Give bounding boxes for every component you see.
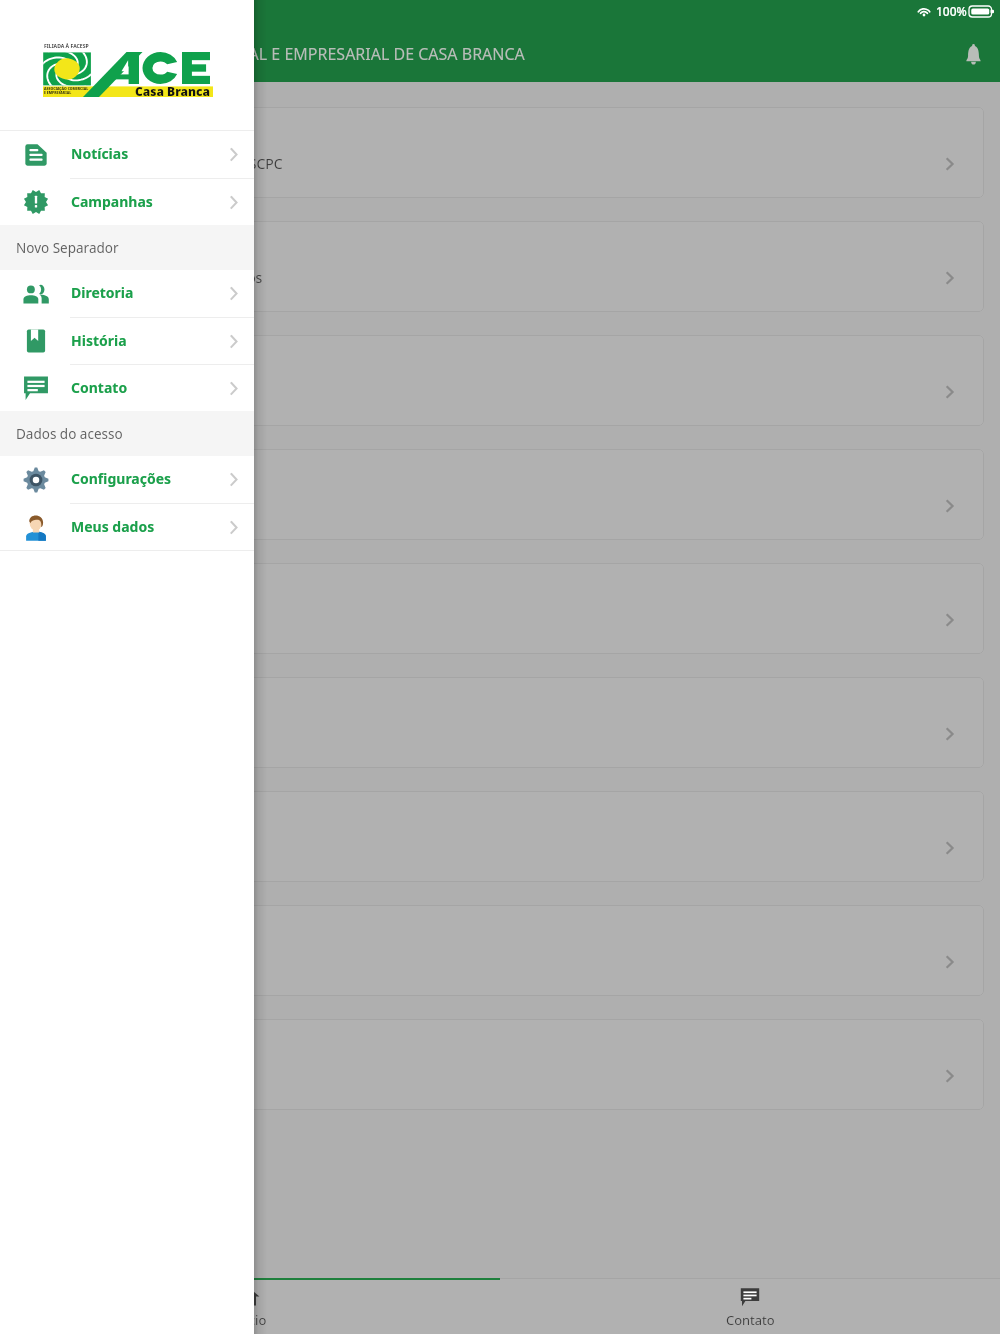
staticText: Meus dados bbox=[71, 517, 155, 536]
staticText: Campanhas bbox=[157, 496, 236, 515]
button[interactable]: Notícias bbox=[0, 131, 254, 178]
staticText: E EMPRESARIAL bbox=[44, 90, 72, 95]
button[interactable]: Contato bbox=[16, 791, 984, 882]
button[interactable]: Notificações bbox=[952, 33, 994, 75]
button[interactable]: Configurações bbox=[16, 905, 984, 996]
button[interactable]: História bbox=[16, 677, 984, 768]
button[interactable]: Início bbox=[0, 1278, 500, 1334]
staticText: Novo Separador bbox=[16, 239, 119, 257]
staticText: Diretoria bbox=[71, 283, 134, 302]
staticText: Notícias bbox=[71, 144, 129, 163]
button[interactable]: Meus dados bbox=[0, 504, 254, 550]
staticText: História bbox=[71, 331, 127, 350]
staticText: 100% bbox=[936, 3, 967, 19]
staticText: Consulta SPC/SCPC bbox=[157, 154, 283, 173]
button[interactable]: Meus dados bbox=[16, 1019, 984, 1110]
staticText: Casa Branca bbox=[135, 83, 211, 99]
staticText: ASSOCIAÇÃO COMERCIAL bbox=[44, 86, 89, 91]
button[interactable]: Contato bbox=[0, 365, 254, 411]
staticText: Dados do acesso bbox=[16, 425, 123, 443]
staticText: Início bbox=[233, 1311, 267, 1329]
staticText: Campanhas bbox=[71, 192, 153, 211]
button[interactable]: História bbox=[0, 318, 254, 364]
staticText: Configurações bbox=[71, 469, 172, 488]
button[interactable]: Contato bbox=[500, 1278, 1000, 1334]
button[interactable]: Diretoria bbox=[0, 270, 254, 317]
staticText: Nossos Serviços bbox=[157, 268, 263, 287]
button[interactable]: Nossos Serviços bbox=[16, 221, 984, 312]
button[interactable]: Consulta SPC/SCPC bbox=[16, 107, 984, 198]
button[interactable]: Configurações bbox=[0, 456, 254, 503]
staticText: Contato bbox=[726, 1311, 775, 1329]
staticText: ASSOCIAÇÃO COMERCIAL E EMPRESARIAL DE CA… bbox=[75, 43, 525, 65]
staticText: FILIADA À FACESP bbox=[44, 43, 89, 50]
button[interactable]: Notícias bbox=[16, 335, 984, 426]
button[interactable]: Diretoria bbox=[16, 563, 984, 654]
button[interactable]: Campanhas bbox=[0, 179, 254, 225]
staticText: Contato bbox=[71, 378, 128, 397]
button[interactable]: Campanhas bbox=[16, 449, 984, 540]
